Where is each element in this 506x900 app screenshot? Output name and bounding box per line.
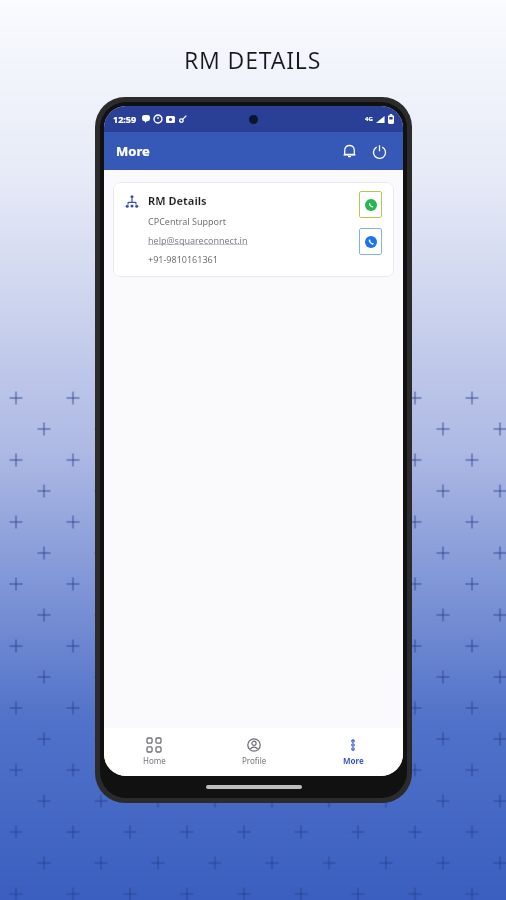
staticText: More xyxy=(116,142,150,160)
button[interactable]: Profile xyxy=(214,728,294,776)
staticText: 4G xyxy=(365,115,373,123)
staticText: Home xyxy=(143,755,166,766)
button[interactable]: Notifications xyxy=(335,137,363,165)
button[interactable]: RM Details xyxy=(113,182,394,277)
button[interactable]: Logout xyxy=(365,137,393,165)
staticText: CPCentral Support xyxy=(148,215,226,227)
staticText: Profile xyxy=(242,755,267,766)
button[interactable]: Contact action xyxy=(359,228,382,255)
staticText: +91-9810161361 xyxy=(148,253,218,265)
button[interactable]: Contact action xyxy=(359,191,382,218)
button[interactable]: Home xyxy=(114,728,194,776)
button[interactable]: More xyxy=(313,728,393,776)
staticText: More xyxy=(343,755,364,766)
staticText: 12:59 xyxy=(113,113,137,125)
staticText: RM DETAILS xyxy=(184,44,322,75)
button[interactable]: help@squareconnect.in xyxy=(148,234,248,246)
staticText: RM Details xyxy=(148,193,207,208)
